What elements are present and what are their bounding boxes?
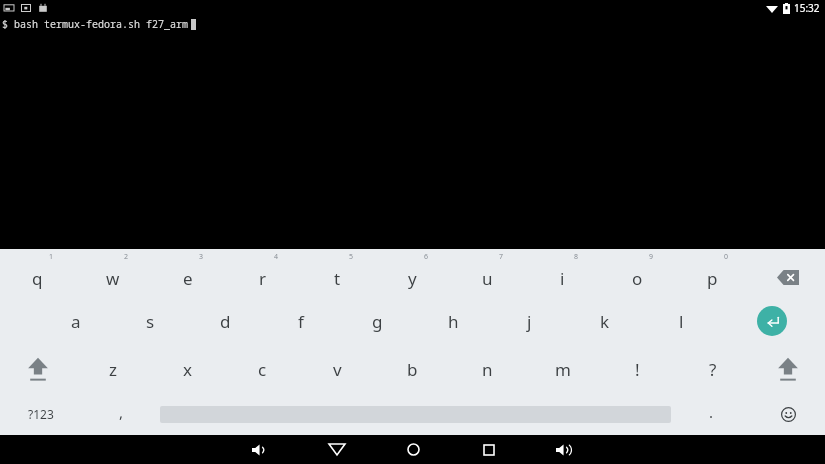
button[interactable]: l	[643, 297, 719, 345]
button[interactable]: Emoji	[751, 393, 825, 435]
button[interactable]: .	[671, 393, 751, 435]
staticText: b	[407, 358, 418, 381]
staticText: 0	[724, 252, 729, 262]
button[interactable]: d	[188, 297, 263, 345]
staticText: x	[183, 358, 192, 381]
staticText: h	[448, 310, 459, 333]
button[interactable]: !	[600, 345, 675, 393]
staticText: g	[372, 310, 383, 333]
staticText: e	[183, 267, 193, 290]
staticText: t	[334, 267, 341, 290]
staticText: 15:32	[794, 1, 820, 15]
staticText: 3	[199, 252, 204, 262]
button[interactable]: Space	[160, 393, 671, 435]
button[interactable]: 1	[0, 249, 75, 297]
button[interactable]: Enter	[719, 297, 825, 345]
button[interactable]: z	[75, 345, 150, 393]
staticText: ,	[119, 402, 124, 422]
button[interactable]: 2	[75, 249, 150, 297]
button[interactable]: 7	[450, 249, 525, 297]
button[interactable]: 9	[600, 249, 675, 297]
button[interactable]: Recent apps	[451, 435, 527, 464]
staticText: a	[71, 310, 81, 333]
staticText: l	[679, 310, 684, 333]
staticText: n	[482, 358, 493, 381]
staticText: 4	[274, 252, 279, 262]
button[interactable]: v	[300, 345, 375, 393]
button[interactable]: g	[339, 297, 415, 345]
staticText: f	[298, 310, 304, 333]
button[interactable]: 8	[525, 249, 600, 297]
staticText: $ bash termux-fedora.sh f27_arm	[2, 17, 188, 31]
staticText: 1	[49, 252, 54, 262]
staticText: p	[707, 267, 718, 290]
button[interactable]: Back	[299, 435, 375, 464]
button[interactable]: b	[375, 345, 450, 393]
button[interactable]: ?	[675, 345, 750, 393]
staticText: .	[709, 402, 714, 422]
staticText: s	[146, 310, 155, 333]
button[interactable]: 4	[225, 249, 300, 297]
staticText: y	[408, 267, 417, 290]
staticText: 6	[424, 252, 429, 262]
button[interactable]: Backspace	[750, 249, 825, 297]
button[interactable]: k	[567, 297, 643, 345]
button[interactable]: Home	[375, 435, 451, 464]
staticText: !	[635, 358, 640, 381]
staticText: c	[258, 358, 267, 381]
button[interactable]: Shift	[750, 345, 825, 393]
button[interactable]: ?123	[0, 393, 82, 435]
staticText: 8	[574, 252, 579, 262]
button[interactable]: s	[113, 297, 188, 345]
staticText: j	[527, 310, 532, 333]
button[interactable]: Volume up	[527, 435, 603, 464]
button[interactable]: Shift	[0, 345, 75, 393]
staticText: r	[259, 267, 267, 290]
button[interactable]: 3	[150, 249, 225, 297]
button[interactable]: ,	[82, 393, 160, 435]
button[interactable]: j	[491, 297, 567, 345]
staticText: w	[106, 267, 120, 290]
staticText: m	[555, 358, 571, 381]
staticText: i	[560, 267, 565, 290]
button[interactable]: 6	[375, 249, 450, 297]
staticText: u	[482, 267, 493, 290]
button[interactable]: 0	[675, 249, 750, 297]
staticText: o	[632, 267, 643, 290]
staticText: v	[333, 358, 342, 381]
staticText: 7	[499, 252, 504, 262]
staticText: q	[32, 267, 43, 290]
staticText: z	[109, 358, 117, 381]
staticText: 5	[349, 252, 354, 262]
staticText: d	[220, 310, 231, 333]
button[interactable]: m	[525, 345, 600, 393]
staticText: 9	[649, 252, 654, 262]
button[interactable]: h	[415, 297, 491, 345]
staticText: ?	[709, 358, 717, 381]
button[interactable]: c	[225, 345, 300, 393]
staticText: 2	[124, 252, 129, 262]
button[interactable]: n	[450, 345, 525, 393]
staticText: k	[600, 310, 610, 333]
button[interactable]: a	[38, 297, 113, 345]
button[interactable]: x	[150, 345, 225, 393]
button[interactable]: 5	[300, 249, 375, 297]
staticText: ?123	[28, 406, 54, 422]
button[interactable]: Volume down	[222, 435, 299, 464]
button[interactable]: f	[263, 297, 339, 345]
